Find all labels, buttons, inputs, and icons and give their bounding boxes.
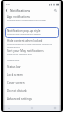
staticText: Appearance bbox=[7, 59, 20, 62]
staticText: Do not disturb bbox=[7, 89, 27, 93]
staticText: App notifications bbox=[7, 15, 30, 19]
staticText: Notifications bbox=[10, 8, 31, 12]
button[interactable]: Back bbox=[3, 7, 10, 14]
button[interactable]: App notifications bbox=[3, 15, 61, 22]
staticText: Choose whether to hide sensitive content… bbox=[7, 43, 57, 49]
staticText: Choose how notifications appear bbox=[7, 33, 41, 36]
button[interactable]: Search bbox=[52, 7, 59, 14]
staticText: Advanced settings bbox=[7, 97, 32, 101]
button[interactable]: Notification pop-up style bbox=[5, 27, 59, 38]
staticText: Change which notifications are shown bbox=[7, 19, 46, 22]
staticText: Show most relevant first bbox=[7, 53, 32, 56]
button[interactable]: Status bar bbox=[3, 64, 61, 69]
staticText: Cover screen bbox=[7, 81, 25, 85]
button[interactable]: Advanced settings bbox=[3, 96, 61, 101]
staticText: Sort your May notifications bbox=[7, 49, 44, 53]
button[interactable]: Do not disturb bbox=[3, 88, 61, 93]
staticText: 9:41 bbox=[6, 3, 11, 6]
button[interactable]: Cover screen bbox=[3, 80, 61, 85]
staticText: Status bar bbox=[7, 65, 21, 69]
button[interactable]: Hide content when locked bbox=[3, 39, 61, 49]
button[interactable]: Back bbox=[7, 106, 11, 110]
button[interactable]: Home bbox=[30, 106, 34, 110]
staticText: Lock screen bbox=[7, 73, 23, 77]
button[interactable]: Recents bbox=[53, 106, 57, 110]
staticText: Notification pop-up style bbox=[7, 29, 41, 33]
button[interactable]: Lock screen bbox=[3, 72, 61, 77]
staticText: Hide content when locked bbox=[7, 39, 43, 43]
button[interactable]: Sort your May notifications bbox=[3, 49, 61, 56]
